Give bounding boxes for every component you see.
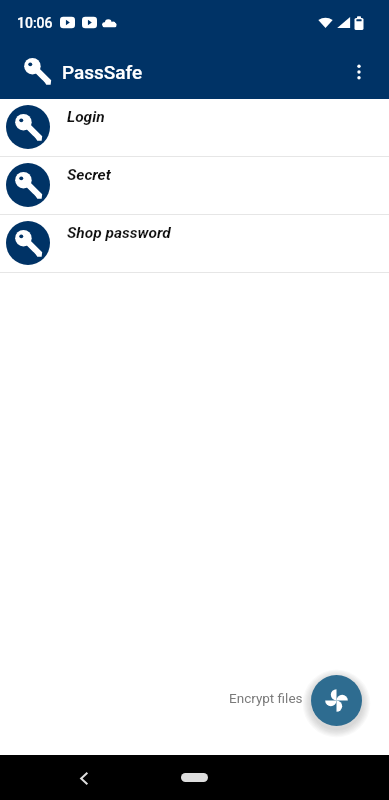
staticText: 10:06 xyxy=(17,15,53,31)
button[interactable]: Back xyxy=(65,759,103,797)
button[interactable]: Encrypt files xyxy=(311,675,362,726)
staticText: PassSafe xyxy=(62,61,143,83)
button[interactable]: Shop password xyxy=(0,215,389,273)
button[interactable]: Home xyxy=(181,773,208,782)
staticText: Shop password xyxy=(67,224,171,242)
button[interactable]: Secret xyxy=(0,157,389,215)
staticText: Encrypt files xyxy=(229,690,303,706)
staticText: Login xyxy=(67,108,105,126)
staticText: Secret xyxy=(67,166,111,184)
button[interactable]: Login xyxy=(0,99,389,157)
button[interactable]: More options xyxy=(335,48,383,96)
